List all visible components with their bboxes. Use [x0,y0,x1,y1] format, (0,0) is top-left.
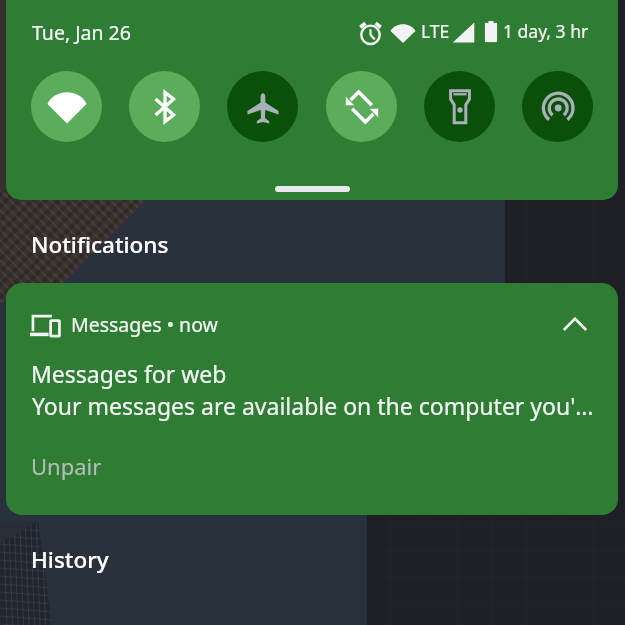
button[interactable]: Collapse notification [554,304,596,346]
staticText: History [31,544,109,575]
button[interactable]: Flashlight [424,71,495,142]
staticText: Unpair [31,451,102,481]
staticText: Notifications [31,229,169,260]
staticText: 1 day, 3 hr [503,19,589,43]
button[interactable]: Messages • now [6,283,618,515]
button[interactable]: Bluetooth [129,71,200,142]
button[interactable]: Hotspot [522,71,593,142]
button[interactable]: Wi-Fi [31,71,102,142]
button[interactable]: Auto rotate [326,71,397,142]
button[interactable]: Unpair [21,445,112,487]
button[interactable]: Airplane mode [227,71,298,142]
staticText: LTE [421,19,450,43]
staticText: Tue, Jan 26 [32,19,131,46]
staticText: Messages for web [31,358,227,389]
staticText: Messages • now [71,311,218,338]
staticText: Your messages are available on the compu… [32,390,598,421]
